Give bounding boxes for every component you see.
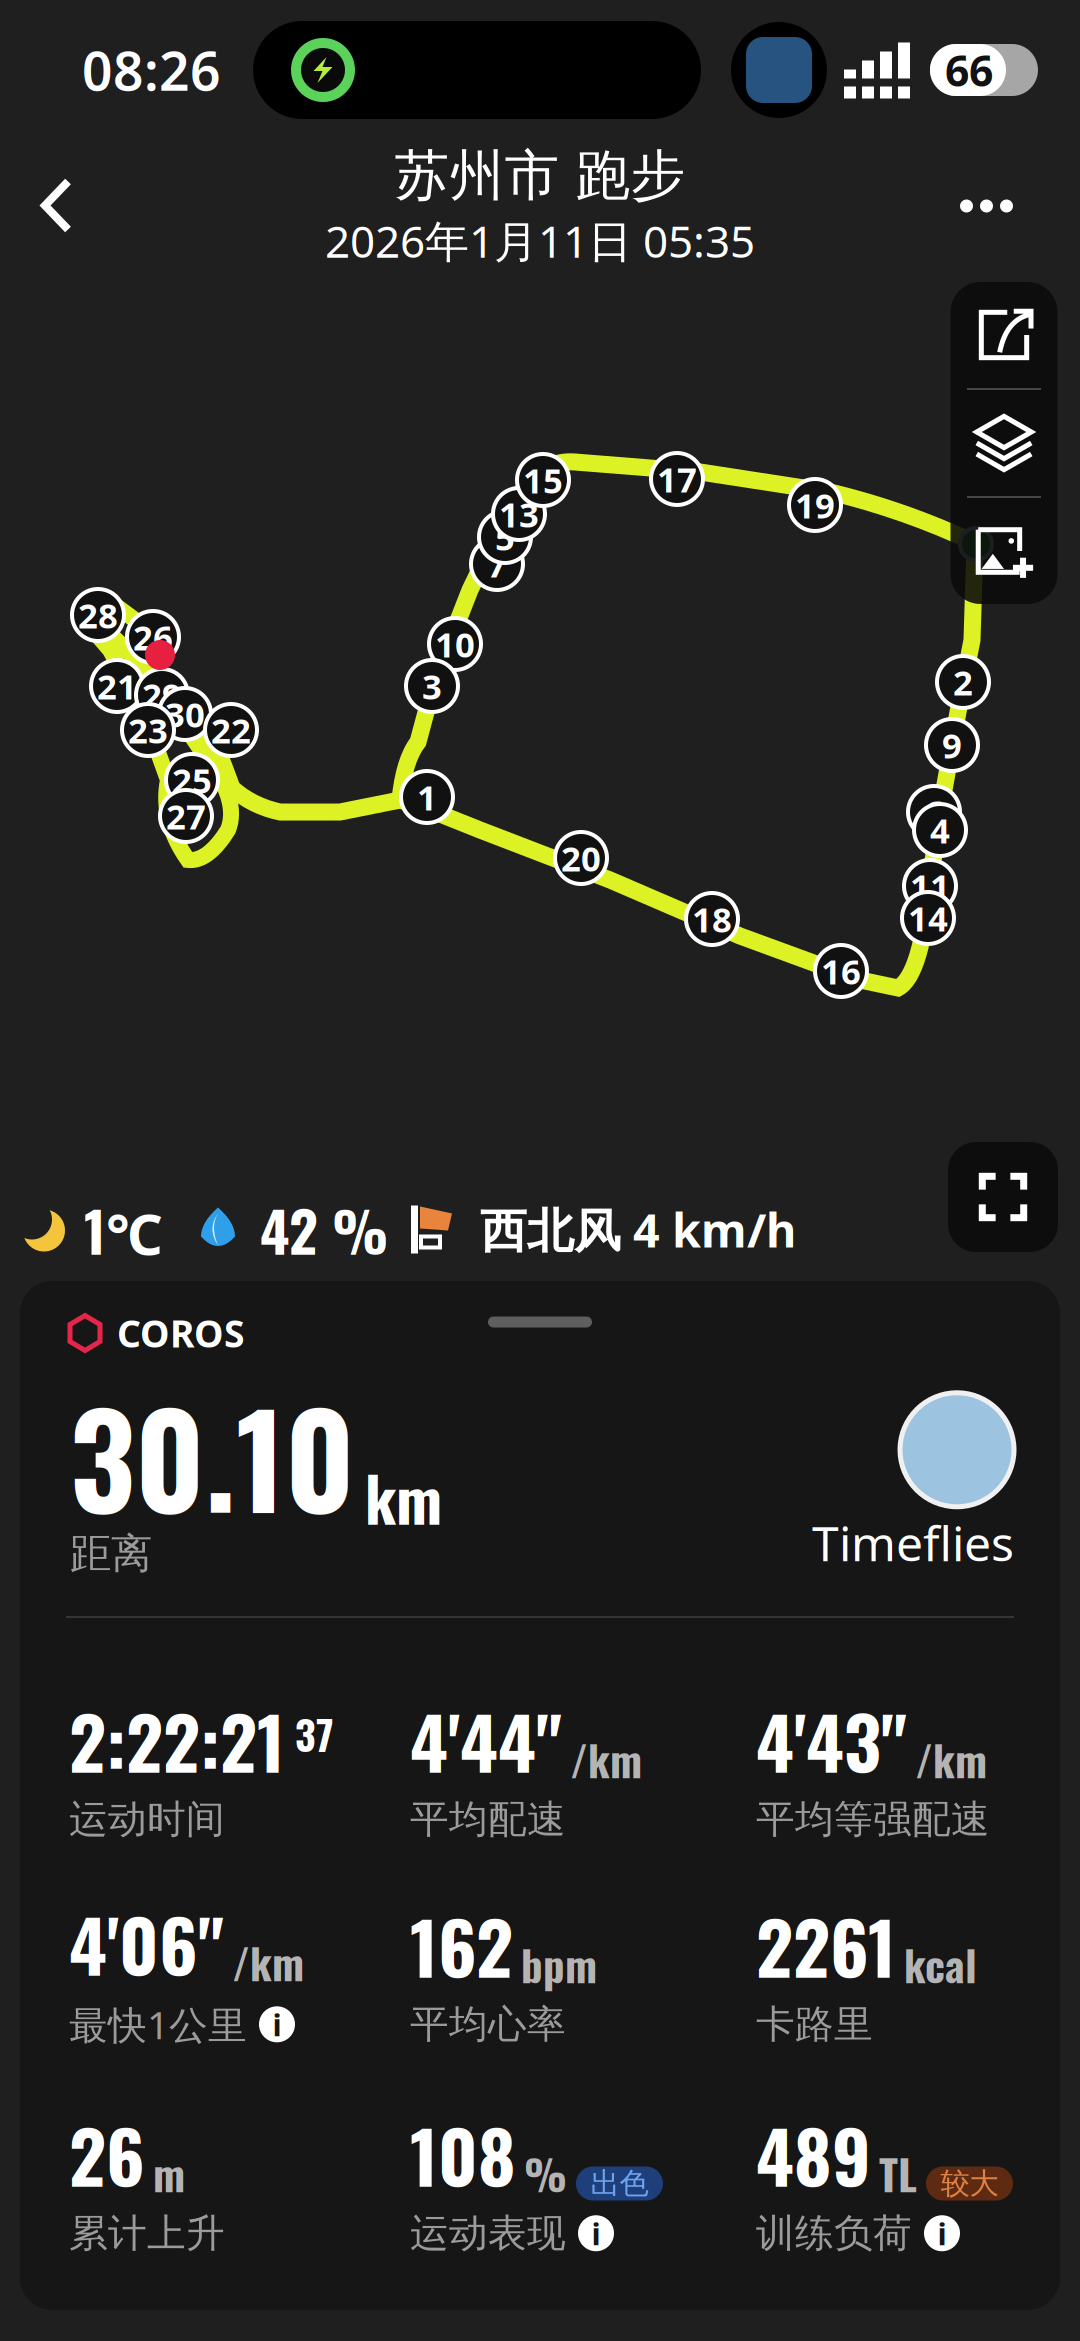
staticText: i	[591, 2213, 600, 2254]
staticText: 489	[756, 2101, 871, 2207]
button[interactable]: Add photo	[950, 498, 1057, 604]
staticText: 2026年1月11日 05:35	[325, 211, 755, 270]
staticText: 30.10	[70, 1362, 355, 1549]
staticText: 3	[422, 663, 442, 709]
staticText: 2261	[756, 1892, 896, 1999]
staticText: 5	[495, 514, 515, 560]
staticText: i	[937, 2213, 946, 2254]
staticText: 13	[499, 491, 539, 537]
staticText: 累计上升	[69, 2209, 225, 2257]
staticText: i	[272, 2004, 281, 2045]
staticText: 1℃	[84, 1188, 162, 1271]
staticText: 17	[657, 456, 697, 502]
staticText: 运动时间	[69, 1795, 225, 1843]
staticText: /km	[570, 1727, 642, 1790]
staticText: 15	[523, 457, 563, 503]
button[interactable]: More options	[920, 165, 1080, 246]
staticText: 7	[487, 541, 507, 587]
staticText: 28	[78, 592, 118, 638]
staticText: 37	[295, 1704, 334, 1763]
staticText: 较大	[940, 2165, 998, 2201]
button[interactable]: Map layers	[950, 390, 1057, 496]
staticText: TL	[879, 2141, 917, 2204]
staticText: kcal	[904, 1932, 977, 1995]
staticText: 10	[435, 621, 475, 667]
staticText: 66	[945, 42, 993, 98]
staticText: 训练负荷	[756, 2209, 912, 2257]
staticText: %	[524, 2141, 567, 2204]
staticText: /km	[232, 1930, 304, 1994]
staticText: 卡路里	[756, 2001, 873, 2048]
staticText: 20	[561, 835, 601, 881]
staticText: 14	[908, 895, 948, 941]
staticText: 42 %	[260, 1188, 388, 1271]
staticText: 4	[930, 807, 950, 853]
staticText: COROS	[117, 1308, 245, 1358]
staticText: 苏州市 跑步	[394, 142, 685, 209]
staticText: km	[365, 1452, 442, 1542]
staticText: 19	[795, 482, 835, 528]
staticText: 23	[128, 707, 168, 753]
staticText: 平均配速	[410, 1795, 566, 1843]
staticText: 平均等强配速	[756, 1795, 990, 1843]
staticText: 16	[821, 948, 861, 994]
staticText: 21	[97, 663, 137, 709]
staticText: 22	[211, 707, 251, 753]
staticText: 25	[172, 757, 212, 803]
staticText: Timeflies	[812, 1511, 1014, 1574]
staticText: 27	[166, 793, 206, 839]
staticText: 2:22:21	[69, 1687, 285, 1793]
staticText: 162	[410, 1892, 513, 1999]
staticText: /km	[915, 1727, 987, 1790]
staticText: 6	[924, 789, 944, 835]
staticText: 26	[133, 614, 173, 660]
staticText: 9	[942, 722, 962, 768]
button[interactable]: Full screen map	[948, 1142, 1058, 1252]
staticText: 108	[410, 2101, 516, 2207]
staticText: 18	[692, 896, 732, 942]
button[interactable]: Back	[0, 155, 114, 256]
staticText: 11	[910, 863, 950, 909]
staticText: 运动表现	[410, 2209, 566, 2257]
staticText: 08:26	[82, 35, 221, 105]
staticText: 2	[953, 659, 973, 705]
staticText: 4'43"	[756, 1687, 907, 1793]
staticText: 29	[142, 672, 182, 718]
button[interactable]: Share	[950, 282, 1057, 388]
staticText: 最快1公里	[69, 1999, 247, 2050]
staticText: 1	[417, 774, 437, 820]
staticText: 出色	[590, 2165, 648, 2201]
staticText: 平均心率	[410, 2001, 566, 2048]
staticText: 4'44"	[410, 1687, 562, 1793]
staticText: 4'06"	[69, 1890, 224, 1997]
staticText: 西北风 4 km/h	[480, 1198, 796, 1260]
staticText: 30	[165, 691, 205, 737]
staticText: 26	[69, 2101, 145, 2207]
staticText: m	[153, 2141, 185, 2204]
staticText: bpm	[521, 1932, 597, 1995]
staticText: 距离	[70, 1528, 152, 1579]
